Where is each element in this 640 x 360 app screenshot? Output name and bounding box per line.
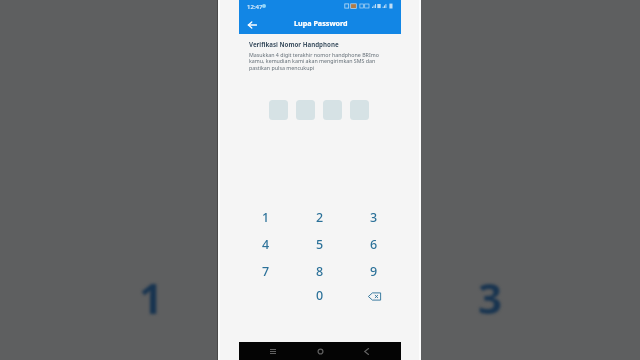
button[interactable]: 3: [347, 204, 401, 230]
staticText: 1: [139, 269, 164, 326]
staticText: Lupa Password: [294, 18, 348, 28]
button[interactable]: Recents: [260, 342, 286, 360]
staticText: 7: [262, 263, 270, 280]
button[interactable]: 4: [239, 231, 293, 257]
staticText: 6: [370, 236, 378, 253]
staticText: 5: [316, 236, 324, 253]
button[interactable]: 5: [293, 231, 347, 257]
button[interactable]: PIN digit 2: [296, 100, 315, 120]
button[interactable]: 0: [293, 282, 347, 308]
staticText: 0: [316, 287, 324, 304]
staticText: 1: [262, 209, 270, 226]
staticText: 3: [370, 209, 378, 226]
button[interactable]: PIN digit 1: [269, 100, 288, 120]
staticText: Verifikasi Nomor Handphone: [249, 40, 339, 48]
staticText: 9: [370, 263, 378, 280]
button[interactable]: 8: [293, 258, 347, 284]
button[interactable]: 1: [239, 204, 293, 230]
staticText: 12:47: [247, 2, 263, 10]
button[interactable]: Back: [242, 15, 261, 34]
button[interactable]: 9: [347, 258, 401, 284]
staticText: 2: [316, 209, 324, 226]
staticText: 4: [262, 236, 270, 253]
button[interactable]: PIN digit 3: [323, 100, 342, 120]
button[interactable]: PIN digit 4: [350, 100, 369, 120]
button[interactable]: 7: [239, 258, 293, 284]
button[interactable]: 6: [347, 231, 401, 257]
staticText: 3: [478, 269, 503, 326]
button[interactable]: Back: [353, 342, 379, 360]
button[interactable]: 2: [293, 204, 347, 230]
staticText: Masukkan 4 digit terakhir nomor handphon…: [249, 51, 382, 72]
staticText: 8: [316, 263, 324, 280]
button[interactable]: Backspace: [347, 282, 401, 308]
button[interactable]: Home: [307, 342, 333, 360]
